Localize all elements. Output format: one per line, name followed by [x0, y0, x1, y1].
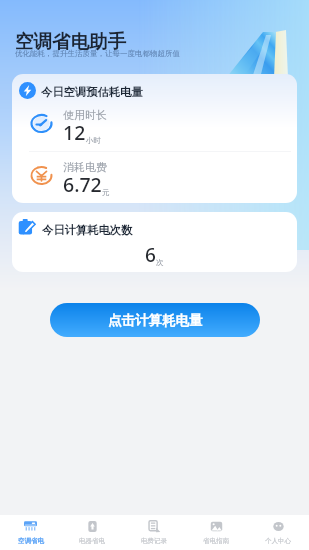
staticText: 省电指南: [203, 537, 229, 545]
staticText: 电器省电: [79, 537, 105, 545]
staticText: 电费记录: [141, 537, 167, 545]
button[interactable]: 省电指南: [185, 515, 247, 550]
staticText: 小时: [86, 136, 101, 145]
staticText: 元: [102, 188, 110, 197]
button[interactable]: 点击计算耗电量: [50, 303, 260, 337]
staticText: 今日计算耗电次数: [42, 223, 133, 237]
staticText: 消耗电费: [63, 160, 107, 174]
button[interactable]: 电器省电: [61, 515, 123, 550]
button[interactable]: 个人中心: [247, 515, 309, 550]
button[interactable]: 空调省电: [0, 515, 61, 550]
staticText: 使用时长: [63, 108, 107, 122]
button[interactable]: 电费记录: [123, 515, 185, 550]
staticText: 个人中心: [265, 537, 291, 545]
staticText: 今日空调预估耗电量: [41, 85, 143, 99]
staticText: 次: [156, 258, 164, 267]
staticText: 空调省电: [18, 537, 44, 545]
staticText: 6.72: [63, 171, 102, 198]
staticText: 6: [145, 242, 156, 268]
staticText: 优化能耗，提升生活质量，让每一度电都物超所值: [15, 49, 180, 58]
staticText: 空调省电助手: [15, 30, 126, 53]
staticText: 点击计算耗电量: [108, 312, 203, 329]
staticText: 12: [63, 119, 86, 146]
